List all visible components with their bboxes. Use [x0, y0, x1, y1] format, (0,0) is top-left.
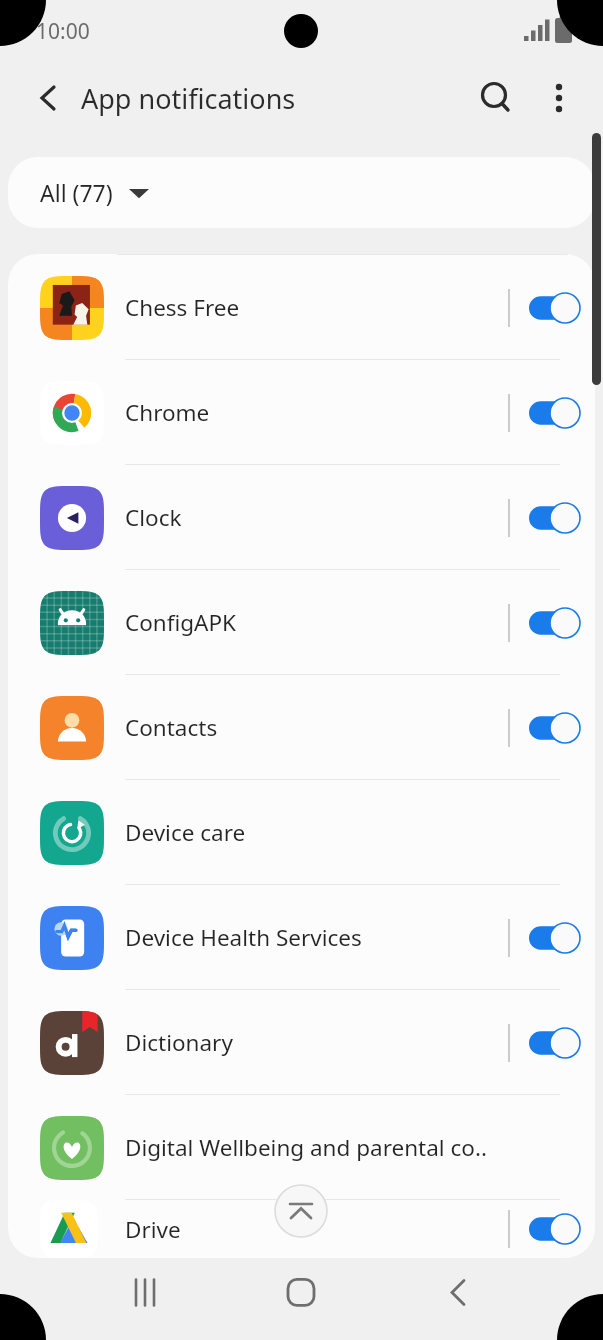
button[interactable]: Dictionary: [8, 990, 595, 1095]
staticText: Chess Free: [125, 292, 508, 323]
staticText: All (77): [40, 177, 113, 208]
button[interactable]: Chess Free: [8, 255, 595, 360]
button[interactable]: Contacts: [8, 675, 595, 780]
button[interactable]: Recents: [109, 1258, 181, 1340]
button[interactable]: Clock: [8, 465, 595, 570]
staticText: App notifications: [81, 80, 296, 117]
staticText: Digital Wellbeing and parental co..: [125, 1132, 560, 1163]
button[interactable]: Back: [422, 1258, 494, 1340]
staticText: Clock: [125, 502, 508, 533]
button[interactable]: Home: [265, 1258, 337, 1340]
staticText: Dictionary: [125, 1027, 508, 1058]
button[interactable]: Scroll to top: [274, 1184, 328, 1238]
button[interactable]: Back: [24, 74, 72, 122]
button[interactable]: Drive: [8, 1200, 595, 1258]
staticText: Device Health Services: [125, 922, 508, 953]
staticText: Chrome: [125, 397, 508, 428]
button[interactable]: More options: [533, 72, 585, 124]
button[interactable]: Chrome: [8, 360, 595, 465]
button[interactable]: Search: [470, 72, 522, 124]
button[interactable]: ConfigAPK: [8, 570, 595, 675]
staticText: Drive: [125, 1214, 508, 1245]
staticText: ConfigAPK: [125, 607, 508, 638]
button[interactable]: Device care: [8, 780, 595, 885]
staticText: 10:00: [36, 17, 90, 46]
staticText: Contacts: [125, 712, 508, 743]
button[interactable]: Digital Wellbeing and parental co..: [8, 1095, 595, 1200]
button[interactable]: All (77): [8, 157, 595, 228]
staticText: Device care: [125, 817, 560, 848]
button[interactable]: Device Health Services: [8, 885, 595, 990]
